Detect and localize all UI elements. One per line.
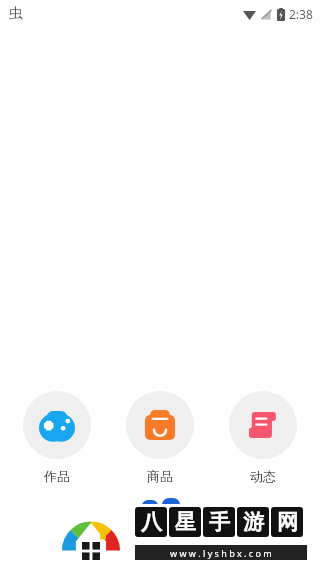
staticText: 网 — [277, 509, 298, 535]
staticText: 2:38 — [289, 6, 313, 22]
button[interactable]: 动态 — [217, 391, 309, 484]
button[interactable]: 商品 — [114, 391, 206, 484]
staticText: 八 — [141, 509, 162, 535]
button[interactable]: 作品 — [11, 391, 103, 484]
staticText: 虫 — [9, 5, 23, 23]
staticText: 商品 — [147, 468, 173, 484]
staticText: 星 — [175, 509, 196, 535]
staticText: 动态 — [250, 468, 276, 484]
staticText: 游 — [243, 509, 264, 535]
staticText: 手 — [209, 509, 230, 535]
staticText: w w w . l y s h b x . c o m — [170, 547, 272, 559]
staticText: 作品 — [44, 468, 70, 484]
